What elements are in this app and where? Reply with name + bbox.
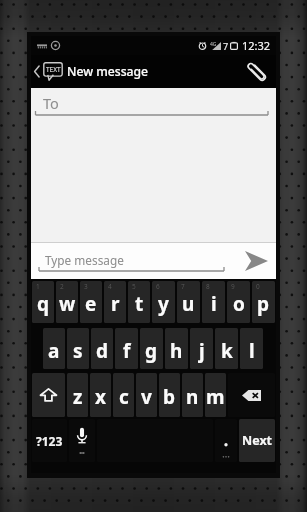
staticText: t: [135, 291, 144, 317]
button[interactable]: r: [104, 281, 126, 323]
button[interactable]: s: [67, 328, 89, 369]
button[interactable]: c: [113, 373, 134, 417]
staticText: Next: [242, 432, 273, 449]
button[interactable]: a: [43, 328, 65, 369]
staticText: 4G: [210, 41, 217, 48]
button[interactable]: d: [91, 328, 113, 369]
staticText: e: [85, 291, 97, 317]
button[interactable]: x: [90, 373, 111, 417]
staticText: d: [96, 338, 109, 364]
staticText: TEXT: [46, 65, 61, 74]
button[interactable]: Send: [236, 243, 276, 279]
button[interactable]: w: [56, 281, 78, 323]
button[interactable]: j: [190, 328, 213, 369]
staticText: r: [111, 291, 120, 317]
staticText: 9: [231, 282, 235, 291]
staticText: y: [158, 291, 169, 317]
button[interactable]: o: [227, 281, 250, 323]
button[interactable]: k: [215, 328, 238, 369]
staticText: 2: [60, 282, 64, 291]
staticText: u: [182, 291, 195, 317]
button[interactable]: m: [205, 373, 226, 417]
button[interactable]: e: [80, 281, 102, 323]
staticText: a: [48, 338, 60, 364]
staticText: k: [221, 338, 233, 364]
staticText: n: [186, 384, 199, 410]
button[interactable]: Attach: [242, 55, 276, 88]
button[interactable]: y: [152, 281, 175, 323]
staticText: Type message: [45, 252, 124, 268]
staticText: w: [59, 291, 76, 317]
staticText: s: [73, 338, 83, 364]
staticText: c: [119, 384, 129, 410]
button[interactable]: b: [159, 373, 180, 417]
button[interactable]: [215, 419, 237, 462]
button[interactable]: Next: [239, 419, 275, 462]
staticText: 12:32: [242, 38, 271, 53]
staticText: 6: [156, 282, 160, 291]
button[interactable]: g: [140, 328, 163, 369]
staticText: i: [211, 291, 217, 317]
button[interactable]: u: [177, 281, 200, 323]
button[interactable]: i: [202, 281, 225, 323]
button[interactable]: Back: [31, 62, 153, 81]
staticText: p: [257, 291, 270, 317]
button[interactable]: ?123: [32, 419, 67, 462]
staticText: g: [145, 338, 158, 364]
staticText: 1: [36, 282, 40, 291]
button[interactable]: To: [31, 88, 276, 121]
button[interactable]: n: [182, 373, 203, 417]
other: Back: [34, 66, 40, 77]
staticText: l: [249, 338, 255, 364]
staticText: 0: [256, 282, 260, 291]
staticText: 3: [84, 282, 88, 291]
staticText: New message: [67, 63, 149, 80]
button[interactable]: p: [252, 281, 275, 323]
staticText: 8: [206, 282, 210, 291]
button[interactable]: z: [67, 373, 88, 417]
staticText: q: [37, 291, 50, 317]
staticText: z: [73, 384, 83, 410]
button[interactable]: l: [240, 328, 263, 369]
staticText: h: [170, 338, 183, 364]
staticText: 4: [108, 282, 112, 291]
staticText: ?123: [36, 433, 63, 449]
staticText: b: [163, 384, 176, 410]
staticText: 7: [223, 40, 229, 52]
button[interactable]: v: [136, 373, 157, 417]
staticText: o: [233, 291, 245, 317]
button[interactable]: Voice input: [69, 419, 95, 462]
staticText: m: [206, 384, 225, 410]
button[interactable]: t: [128, 281, 150, 323]
staticText: To: [43, 93, 59, 113]
staticText: 5: [132, 282, 136, 291]
button[interactable]: Backspace: [228, 373, 275, 417]
button[interactable]: Shift: [32, 373, 65, 417]
staticText: v: [141, 384, 152, 410]
staticText: f: [123, 338, 131, 364]
staticText: j: [199, 338, 205, 364]
button[interactable]: q: [32, 281, 54, 323]
staticText: 7: [181, 282, 185, 291]
button[interactable]: f: [115, 328, 138, 369]
staticText: x: [95, 384, 106, 410]
button[interactable]: h: [165, 328, 188, 369]
